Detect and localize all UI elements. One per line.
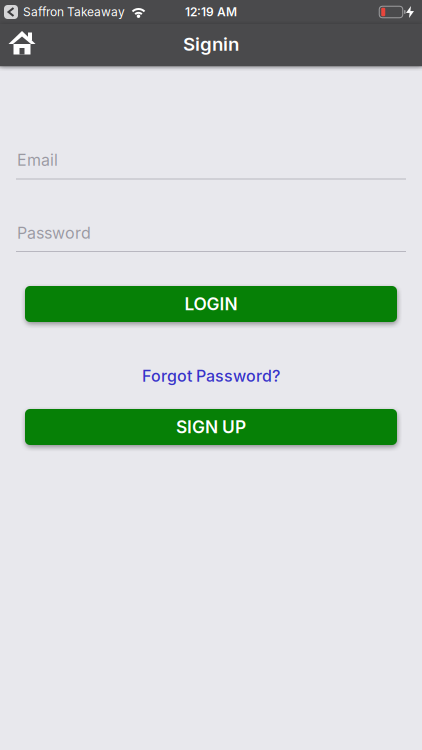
staticText: Saffron Takeaway: [23, 5, 125, 19]
button[interactable]: SIGN UP: [25, 409, 397, 445]
button[interactable]: [8, 31, 35, 55]
staticText: Signin: [183, 33, 239, 55]
staticText: LOGIN: [184, 294, 237, 314]
button[interactable]: LOGIN: [25, 286, 397, 322]
button[interactable]: Forgot Password?: [142, 367, 280, 385]
staticText: 12:19 AM: [185, 5, 237, 19]
staticText: Email: [17, 151, 58, 169]
staticText: Password: [17, 224, 91, 242]
staticText: SIGN UP: [176, 417, 246, 437]
staticText: Forgot Password?: [142, 367, 280, 385]
